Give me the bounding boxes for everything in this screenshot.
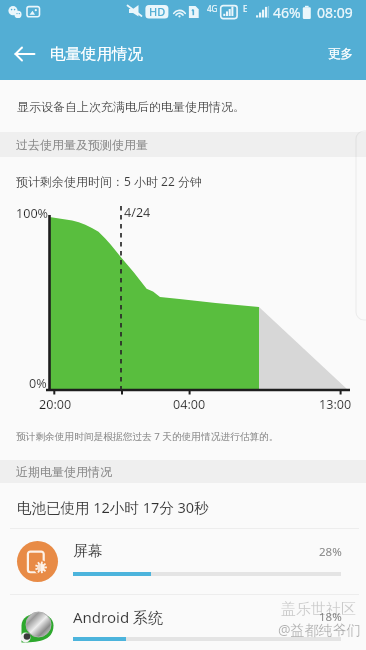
staticText: 08:09: [317, 3, 353, 22]
staticText: Android 系统: [73, 607, 164, 627]
staticText: 过去使用量及预测使用量: [16, 137, 148, 152]
staticText: 预计剩余使用时间是根据您过去 7 天的使用情况进行估算的。: [16, 430, 279, 443]
staticText: 更多: [328, 46, 353, 62]
staticText: 0%: [29, 375, 47, 392]
staticText: 18%: [319, 609, 342, 625]
button[interactable]: 更多: [315, 34, 366, 74]
staticText: 显示设备自上次充满电后的电量使用情况。: [17, 99, 245, 114]
staticText: 盖乐世社区: [281, 600, 356, 619]
button[interactable]: Back: [5, 34, 45, 74]
staticText: 100%: [16, 205, 49, 222]
button[interactable]: Android 系统: [0, 594, 366, 650]
staticText: @益都纯爷们: [278, 620, 361, 639]
staticText: 近期电量使用情况: [16, 464, 112, 479]
staticText: 电池已使用 12小时 17分 30秒: [17, 497, 209, 517]
staticText: HD: [149, 4, 166, 19]
staticText: 4G: [207, 3, 218, 14]
staticText: 4/24: [124, 204, 151, 221]
staticText: 预计剩余使用时间：5 小时 22 分钟: [16, 173, 202, 189]
staticText: 20:00: [39, 396, 72, 413]
staticText: 46%: [273, 3, 301, 22]
button[interactable]: 屏幕: [0, 529, 366, 594]
staticText: E: [243, 3, 248, 14]
staticText: 13:00: [319, 396, 352, 413]
staticText: 04:00: [173, 396, 206, 413]
staticText: 28%: [319, 544, 342, 560]
staticText: 屏幕: [73, 542, 103, 561]
staticText: 电量使用情况: [50, 44, 143, 64]
